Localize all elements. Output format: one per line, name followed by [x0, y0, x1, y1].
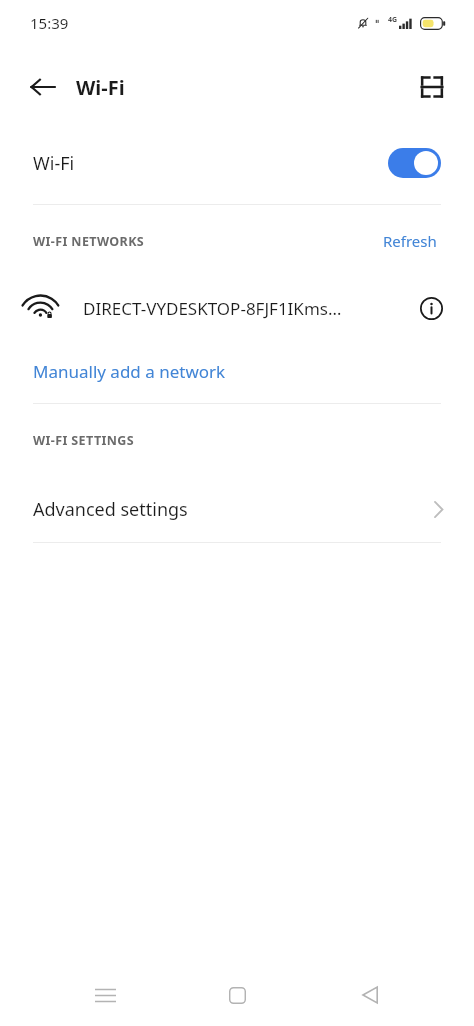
button[interactable]: Refresh [379, 225, 441, 257]
button[interactable]: Scan QR code [406, 61, 458, 113]
button[interactable]: Manually add a network [0, 339, 474, 403]
staticText: DIRECT-VYDESKTOP-8FJF1IKms… [83, 297, 404, 320]
staticText: Advanced settings [33, 497, 433, 522]
button[interactable]: Back [16, 60, 70, 114]
button[interactable]: Back [342, 967, 398, 1023]
staticText: Wi-Fi [76, 74, 125, 101]
button[interactable]: Wi-Fi [0, 122, 474, 204]
staticText: Manually add a network [33, 360, 226, 383]
staticText: Wi-Fi [33, 151, 388, 176]
staticText: 4G [388, 15, 398, 25]
button[interactable]: DIRECT-VYDESKTOP-8FJF1IKms… [0, 277, 474, 339]
staticText: 15:39 [30, 13, 69, 33]
button[interactable]: Network details [412, 289, 450, 327]
staticText: WI-FI NETWORKS [33, 233, 379, 250]
staticText: WI-FI SETTINGS [33, 432, 135, 449]
button[interactable]: Recent apps [77, 967, 133, 1023]
button[interactable]: Advanced settings [0, 476, 474, 542]
button[interactable]: Home [209, 967, 265, 1023]
staticText: Refresh [383, 231, 437, 251]
